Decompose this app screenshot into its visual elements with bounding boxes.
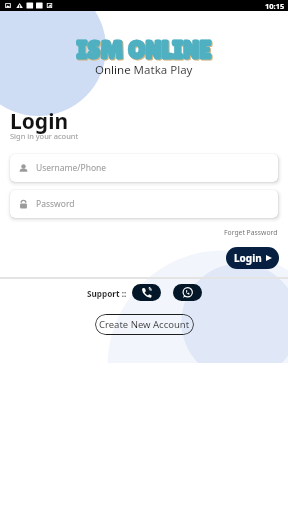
button[interactable]: Create New Account <box>95 314 194 335</box>
staticText: Login <box>10 107 69 136</box>
staticText: Username/Phone <box>36 162 107 174</box>
staticText: Create New Account <box>99 318 190 331</box>
staticText: 10:15 <box>265 1 285 11</box>
staticText: Sign in your acount <box>10 131 79 141</box>
button[interactable]: Password <box>10 190 278 218</box>
staticText: ISM ONLINE <box>76 36 212 65</box>
button[interactable]: Login <box>226 247 279 269</box>
staticText: Login <box>234 251 262 265</box>
button[interactable]: WhatsApp support <box>173 284 202 301</box>
staticText: Online Matka Play <box>95 62 193 78</box>
staticText: Support :: <box>87 288 127 299</box>
staticText: ISM ONLINE <box>77 37 213 66</box>
button[interactable]: Username/Phone <box>10 154 278 182</box>
button[interactable]: Forget Password <box>224 228 278 237</box>
button[interactable]: Call support <box>132 284 161 301</box>
staticText: Password <box>36 198 75 210</box>
